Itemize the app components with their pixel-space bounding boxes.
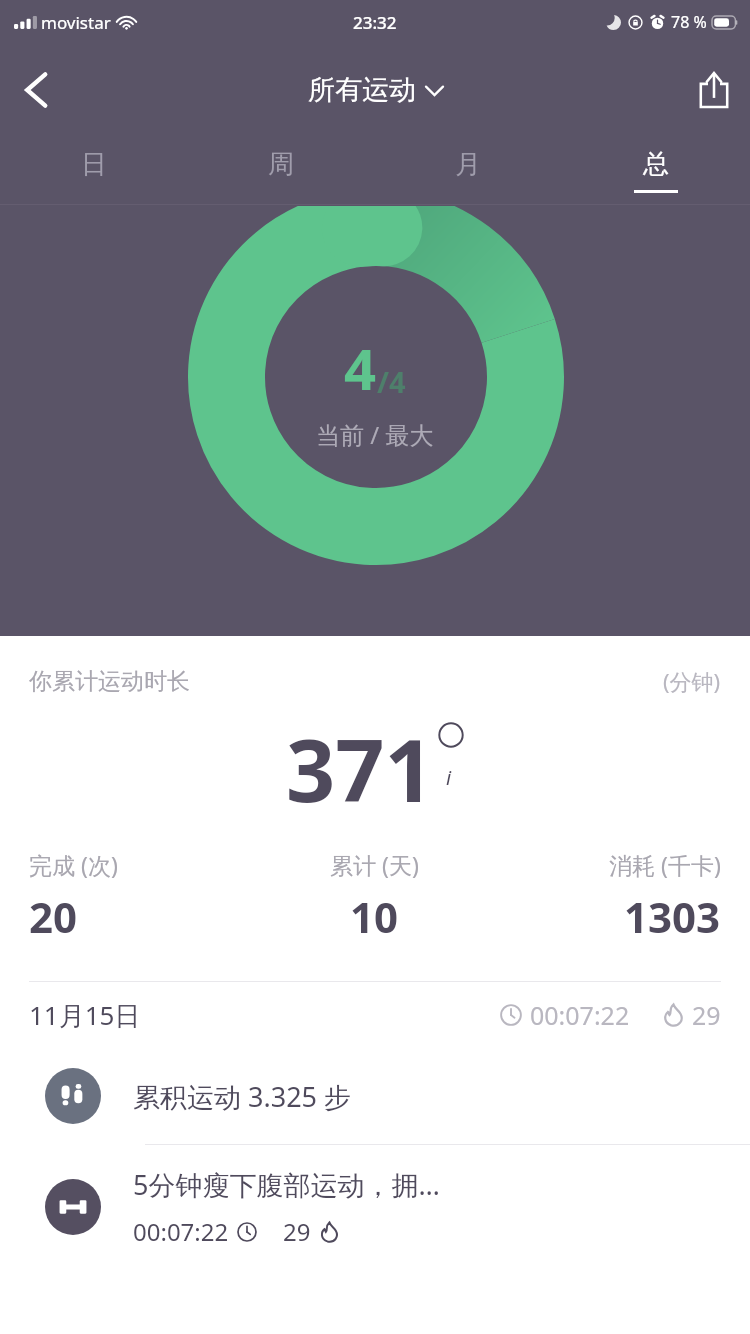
staticText: 00:07:22 — [133, 1215, 229, 1248]
staticText: 所有运动 — [308, 73, 416, 107]
staticText: 29 — [283, 1215, 311, 1248]
staticText: 月 — [455, 148, 481, 181]
staticText: 29 — [692, 998, 721, 1032]
staticText: 周 — [268, 148, 294, 181]
button[interactable]: Back — [0, 54, 72, 126]
button[interactable]: Info — [438, 722, 464, 748]
staticText: /4 — [377, 362, 406, 401]
staticText: movistar — [41, 11, 111, 34]
staticText: 5分钟瘦下腹部运动，拥… — [133, 1166, 440, 1203]
staticText: 23:32 — [353, 11, 397, 34]
staticText: i — [446, 764, 452, 791]
staticText: 累积运动 3.325 步 — [133, 1078, 352, 1115]
button[interactable]: 周 — [187, 136, 374, 205]
staticText: (分钟) — [663, 666, 721, 696]
button[interactable]: 日 — [0, 136, 187, 205]
staticText: 你累计运动时长 — [29, 667, 190, 696]
staticText: 78 % — [671, 11, 707, 33]
button[interactable]: Share — [678, 54, 750, 126]
staticText: 消耗 (千卡) — [609, 849, 721, 880]
staticText: 11月15日 — [29, 997, 141, 1033]
staticText: 10 — [350, 888, 399, 945]
button[interactable]: 5分钟瘦下腹部运动，拥… — [0, 1145, 750, 1269]
staticText: 累计 (天) — [330, 849, 419, 880]
staticText: 4 — [344, 330, 377, 406]
staticText: 20 — [29, 888, 78, 945]
staticText: 当前 / 最大 — [316, 418, 434, 451]
staticText: 总 — [643, 148, 669, 181]
staticText: 1303 — [624, 888, 721, 945]
button[interactable]: 累积运动 3.325 步 — [0, 1048, 750, 1144]
staticText: 371 — [286, 710, 434, 827]
staticText: 完成 (次) — [29, 849, 118, 880]
staticText: 日 — [81, 148, 107, 181]
button[interactable]: 月 — [374, 136, 562, 205]
staticText: 00:07:22 — [530, 998, 630, 1032]
button[interactable]: 所有运动 — [308, 73, 443, 107]
button[interactable]: 总 — [562, 136, 750, 205]
